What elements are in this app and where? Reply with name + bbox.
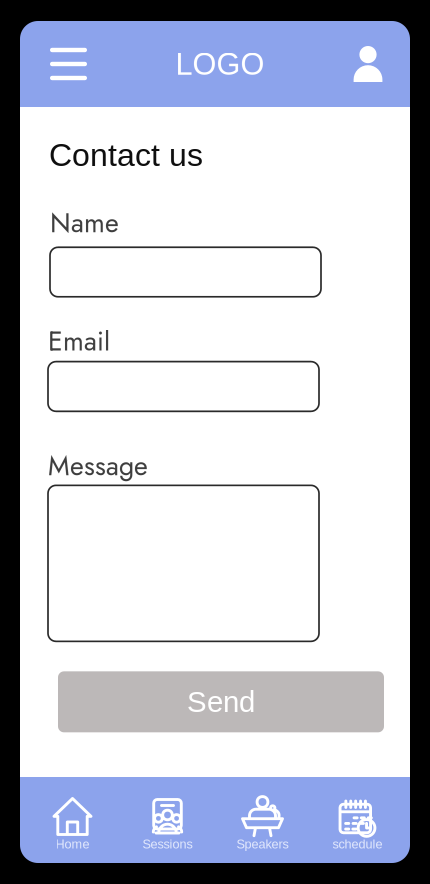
button[interactable]: Menu (20, 31, 101, 97)
button[interactable]: Speakers (215, 777, 310, 863)
staticText: Home (55, 837, 89, 851)
staticText: Name (50, 204, 119, 242)
button[interactable]: Profile (339, 31, 410, 97)
staticText: Contact us (49, 137, 203, 173)
button[interactable]: Email field (48, 362, 319, 411)
staticText: Message (48, 447, 148, 485)
staticText: schedule (332, 837, 382, 851)
button[interactable]: Home (25, 777, 120, 863)
button[interactable]: Sessions (120, 777, 215, 863)
staticText: Send (187, 685, 255, 718)
button[interactable]: Name field (50, 247, 321, 297)
button[interactable]: Message field (48, 485, 319, 641)
staticText: LOGO (175, 47, 264, 81)
staticText: Sessions (142, 837, 192, 851)
staticText: Email (48, 322, 110, 361)
button[interactable]: schedule (310, 777, 405, 863)
button[interactable]: Send (58, 671, 384, 732)
staticText: Speakers (236, 837, 288, 851)
